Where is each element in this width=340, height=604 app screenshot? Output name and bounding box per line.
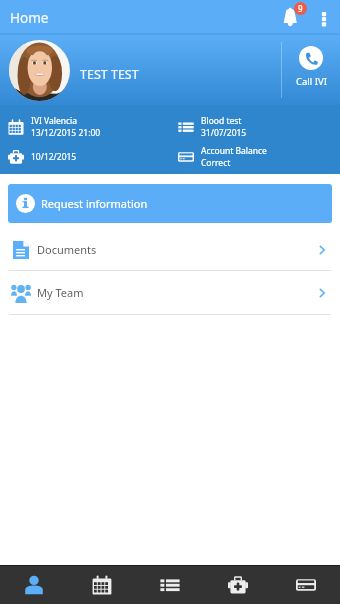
button[interactable]: Request information [8, 184, 332, 223]
staticText: Correct [201, 157, 231, 169]
staticText: 13/12/2015 21:00 [31, 127, 101, 139]
staticText: Account Balance [201, 145, 267, 157]
button[interactable]: Payments [272, 566, 340, 604]
staticText: Request information [41, 196, 148, 211]
staticText: 31/07/2015 [201, 127, 247, 139]
button[interactable]: Blood test [170, 112, 340, 142]
button[interactable]: Documents [0, 229, 340, 270]
button[interactable]: List [136, 566, 204, 604]
staticText: Blood test [201, 115, 242, 127]
staticText: My Team [37, 285, 84, 300]
button[interactable]: 10/12/2015 [0, 142, 170, 172]
staticText: Documents [37, 242, 97, 257]
staticText: 10/12/2015 [31, 151, 77, 163]
staticText: Call IVI [296, 75, 327, 88]
staticText: IVI Valencia [31, 115, 78, 127]
button[interactable]: Account Balance [170, 142, 340, 172]
button[interactable]: My Team [0, 271, 340, 314]
button[interactable]: IVI Valencia [0, 112, 170, 142]
staticText: TEST TEST [80, 66, 139, 83]
button[interactable]: Notifications [281, 4, 309, 32]
staticText: 9 [298, 3, 303, 14]
button[interactable]: Calendar [68, 566, 136, 604]
staticText: Home [10, 9, 49, 27]
button[interactable]: Profile [0, 566, 68, 604]
button[interactable]: Call IVI [282, 35, 340, 105]
button[interactable]: More options [312, 6, 336, 30]
button[interactable]: Medical [204, 566, 272, 604]
